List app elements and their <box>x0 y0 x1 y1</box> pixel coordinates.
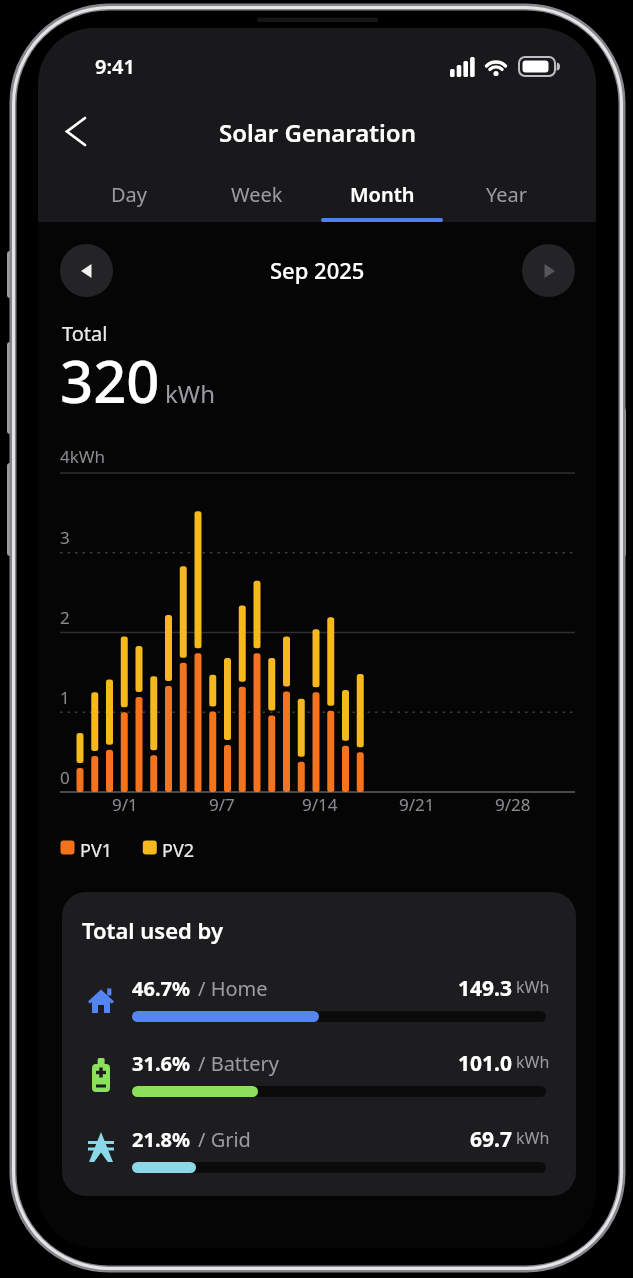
staticText: 46.7% <box>132 975 190 1002</box>
staticText: Sep 2025 <box>270 255 365 285</box>
button[interactable] <box>48 111 96 153</box>
staticText: 0 <box>60 766 70 789</box>
staticText: 1 <box>60 686 70 709</box>
staticText: Total used by <box>82 915 223 945</box>
staticText: 9/1 <box>112 793 138 816</box>
staticText: Week <box>231 181 283 208</box>
staticText: 2 <box>60 606 70 629</box>
staticText: kWh <box>516 1127 550 1149</box>
staticText: kWh <box>516 1051 550 1073</box>
staticText: 9:41 <box>95 53 135 80</box>
staticText: 320 <box>60 341 160 420</box>
staticText: Year <box>486 181 528 208</box>
staticText: 21.8% <box>132 1126 190 1153</box>
button[interactable]: Month <box>327 174 437 214</box>
button[interactable]: Day <box>74 174 184 214</box>
staticText: / Grid <box>198 1126 251 1153</box>
staticText: PV1 <box>80 838 112 863</box>
staticText: 101.0 <box>458 1049 512 1075</box>
button[interactable] <box>522 244 575 297</box>
button[interactable]: Week <box>202 174 312 214</box>
staticText: 9/28 <box>495 793 531 816</box>
staticText: 149.3 <box>458 974 512 1000</box>
staticText: 4kWh <box>60 445 106 468</box>
staticText: Month <box>350 181 415 208</box>
button[interactable] <box>60 244 113 297</box>
staticText: 3 <box>60 526 70 549</box>
staticText: kWh <box>516 976 550 998</box>
staticText: Solar Genaration <box>219 116 416 149</box>
staticText: 9/7 <box>209 793 235 816</box>
button[interactable]: Year <box>452 174 562 214</box>
staticText: Day <box>111 181 148 208</box>
staticText: Total <box>62 320 108 347</box>
staticText: / Battery <box>198 1050 280 1077</box>
staticText: 31.6% <box>132 1050 190 1077</box>
staticText: 9/21 <box>399 793 435 816</box>
staticText: kWh <box>165 377 215 410</box>
staticText: 9/14 <box>302 793 338 816</box>
staticText: 69.7 <box>470 1125 512 1151</box>
staticText: / Home <box>198 975 268 1002</box>
staticText: PV2 <box>162 838 194 863</box>
